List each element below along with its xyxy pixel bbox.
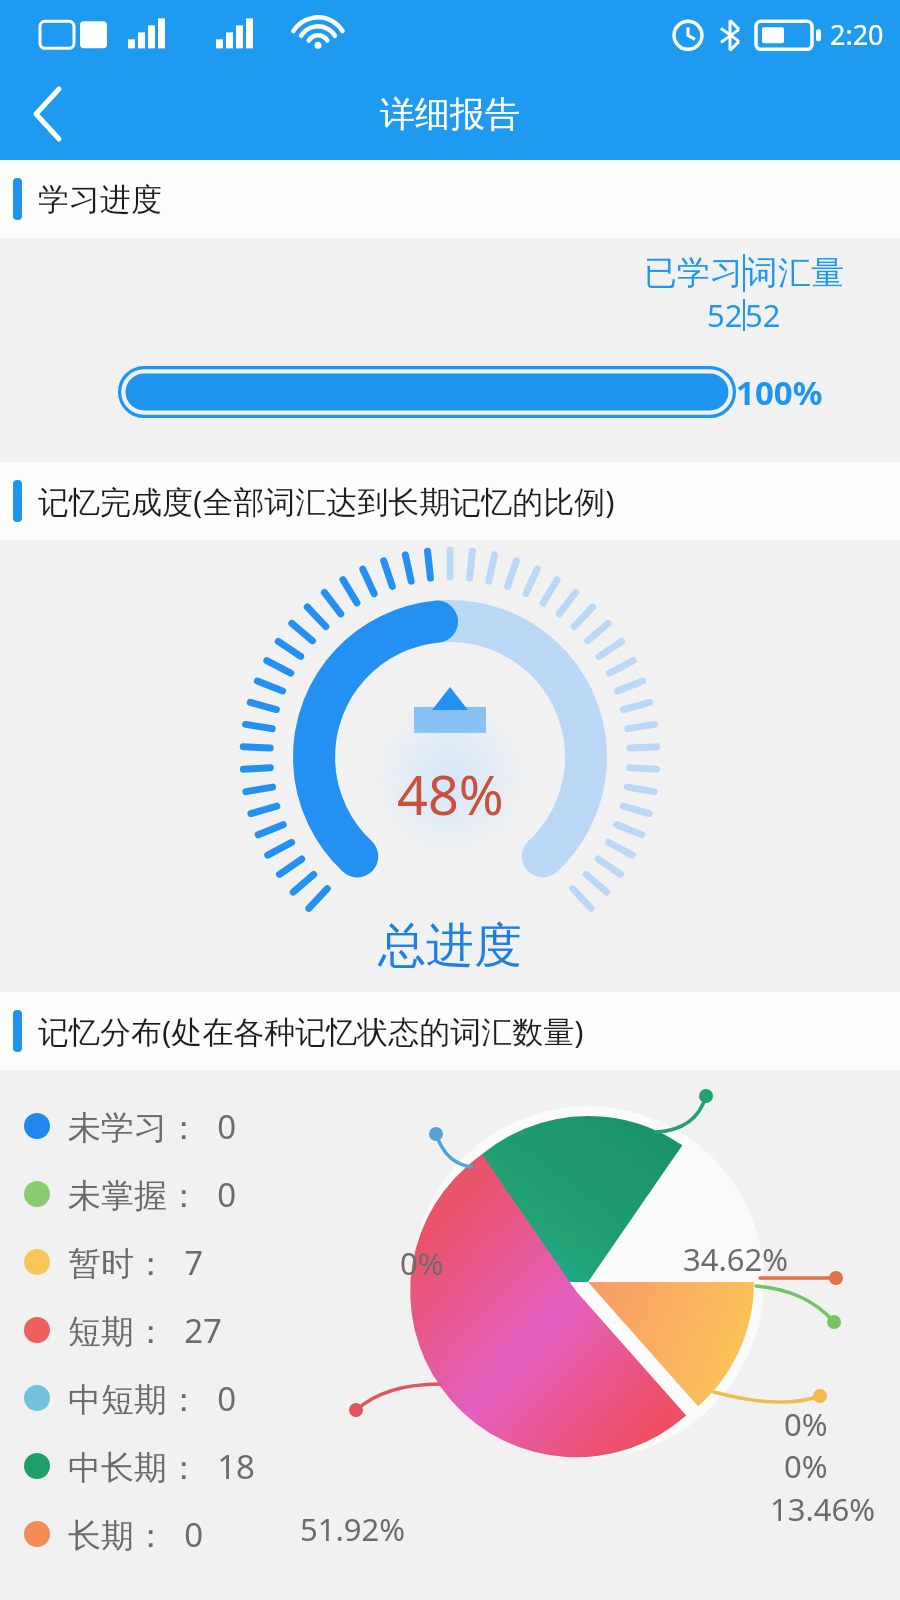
staticText: 100%	[736, 370, 823, 415]
button[interactable]: Back	[10, 76, 86, 152]
button[interactable]: 未掌握： 0	[24, 1160, 237, 1228]
staticText: 词汇量	[745, 252, 844, 294]
staticText: 中长期： 18	[68, 1444, 255, 1489]
staticText: 52	[745, 294, 781, 336]
staticText: 详细报告	[380, 92, 520, 136]
staticText: 52	[707, 294, 743, 336]
button[interactable]: 暂时： 7	[24, 1228, 204, 1296]
button[interactable]: 记忆完成度(全部词汇达到长期记忆的比例)	[0, 462, 900, 540]
staticText: 长期： 0	[68, 1512, 204, 1557]
staticText: 48%	[397, 757, 504, 831]
staticText: 13.46%	[770, 1488, 875, 1530]
staticText: 学习进度	[38, 180, 162, 219]
button[interactable]: 中长期： 18	[24, 1432, 255, 1500]
staticText: 短期： 27	[68, 1308, 222, 1353]
staticText: 2:20	[830, 16, 884, 53]
button[interactable]: 记忆分布(处在各种记忆状态的词汇数量)	[0, 992, 900, 1070]
staticText: 未掌握： 0	[68, 1172, 237, 1217]
staticText: 0%	[784, 1403, 828, 1445]
staticText: 中短期： 0	[68, 1376, 237, 1421]
staticText: 0%	[784, 1445, 828, 1487]
button[interactable]: 中短期： 0	[24, 1364, 237, 1432]
staticText: 暂时： 7	[68, 1240, 204, 1285]
button[interactable]: 学习进度	[0, 160, 900, 238]
button[interactable]: 短期： 27	[24, 1296, 222, 1364]
staticText: 已学习	[644, 252, 743, 294]
staticText: 51.92%	[300, 1508, 405, 1550]
staticText: 0%	[400, 1242, 444, 1284]
staticText: 记忆分布(处在各种记忆状态的词汇数量)	[38, 1010, 584, 1052]
staticText: 记忆完成度(全部词汇达到长期记忆的比例)	[38, 480, 615, 522]
staticText: 未学习： 0	[68, 1104, 237, 1149]
staticText: 总进度	[378, 916, 522, 976]
button[interactable]: 未学习： 0	[24, 1092, 237, 1160]
staticText: 34.62%	[683, 1238, 788, 1280]
button[interactable]: 长期： 0	[24, 1500, 204, 1568]
